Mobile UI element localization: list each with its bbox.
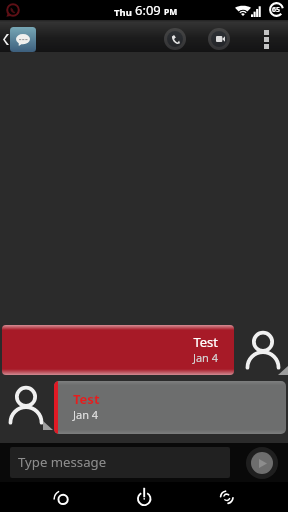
staticText: Test <box>73 390 100 408</box>
button[interactable]: Send <box>246 447 278 479</box>
button[interactable]: Video call <box>208 28 230 50</box>
button[interactable]: Test <box>54 381 286 434</box>
button[interactable]: Call <box>164 28 186 50</box>
button[interactable]: Test <box>2 325 234 375</box>
staticText: Test <box>193 333 218 351</box>
button[interactable]: Home <box>124 482 164 512</box>
button[interactable]: Back <box>0 20 10 52</box>
button[interactable]: Type message <box>10 447 230 478</box>
staticText: Jan 4 <box>192 350 218 365</box>
staticText: Jan 4 <box>73 407 99 422</box>
button[interactable]: Contact avatar <box>10 27 36 52</box>
button[interactable]: Recent apps <box>207 482 247 512</box>
button[interactable]: Back <box>44 482 84 512</box>
staticText: Type message <box>18 453 107 471</box>
staticText: 6:09 <box>135 1 161 19</box>
staticText: Thu <box>114 6 132 19</box>
button[interactable]: More options <box>255 20 277 52</box>
staticText: 65 <box>272 5 281 15</box>
staticText: PM <box>164 6 178 18</box>
